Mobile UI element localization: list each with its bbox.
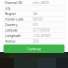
- staticText: City: [4, 5, 10, 11]
- staticText: Country: [4, 22, 17, 27]
- staticText: 37.774929: [32, 27, 49, 33]
- staticText: US: [32, 22, 37, 27]
- staticText: Postal Code: [4, 16, 23, 22]
- staticText: chn_4829: [32, 0, 48, 5]
- staticText: Longitude: [4, 33, 20, 38]
- staticText: Radius: [4, 38, 15, 44]
- staticText: Latitude: [4, 27, 17, 33]
- staticText: Continue: [27, 46, 41, 51]
- staticText: CA: [32, 11, 36, 16]
- staticText: 94103: [32, 16, 42, 22]
- staticText: 250: [32, 38, 38, 44]
- staticText: Channel ID: [4, 0, 22, 5]
- staticText: -122.41941: [32, 33, 50, 38]
- staticText: Region: [4, 11, 15, 16]
- button[interactable]: Continue: [3, 44, 64, 53]
